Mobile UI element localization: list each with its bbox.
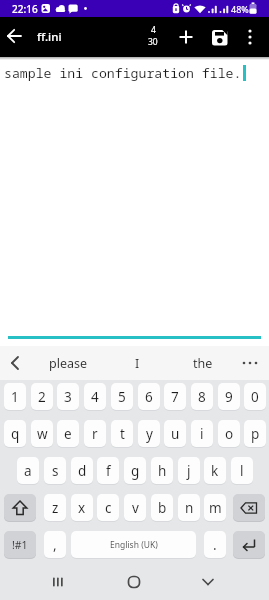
button[interactable]: m (204, 494, 226, 521)
button[interactable]: u (164, 420, 186, 447)
button[interactable] (233, 494, 265, 521)
button[interactable] (120, 570, 148, 594)
staticText: j (187, 462, 191, 480)
staticText: the (193, 355, 213, 372)
staticText: n (185, 499, 194, 517)
staticText: 7 (171, 388, 179, 406)
button[interactable]: w (31, 420, 53, 447)
staticText: 3 (64, 388, 72, 406)
button[interactable]: . (204, 531, 226, 558)
button[interactable]: !#1 (4, 531, 36, 558)
staticText: a (24, 462, 32, 480)
button[interactable]: y (138, 420, 160, 447)
button[interactable]: 4 (141, 24, 165, 48)
staticText: d (78, 462, 87, 480)
button[interactable]: i (191, 420, 213, 447)
button[interactable]: 5 (111, 383, 133, 410)
button[interactable]: 3 (57, 383, 79, 410)
button[interactable]: h (151, 457, 173, 484)
button[interactable]: q (4, 420, 26, 447)
button[interactable]: a (17, 457, 39, 484)
button[interactable]: 6 (138, 383, 160, 410)
staticText: r (92, 425, 98, 443)
button[interactable]: 7 (164, 383, 186, 410)
staticText: 8 (198, 388, 206, 406)
staticText: 2 (38, 388, 46, 406)
button[interactable]: 8 (191, 383, 213, 410)
button[interactable]: o (218, 420, 240, 447)
button[interactable]: please (36, 346, 101, 380)
button[interactable]: 0 (244, 383, 266, 410)
staticText: x (78, 499, 86, 517)
staticText: 4 (91, 388, 99, 406)
staticText: t (120, 425, 125, 443)
button[interactable]: r (84, 420, 106, 447)
button[interactable] (175, 26, 197, 48)
button[interactable]: the (170, 346, 235, 380)
staticText: s (52, 462, 59, 480)
button[interactable]: v (124, 494, 146, 521)
staticText: ff.ini (37, 29, 62, 45)
button[interactable] (194, 570, 222, 594)
button[interactable]: e (57, 420, 79, 447)
staticText: v (132, 499, 139, 517)
button[interactable]: j (178, 457, 200, 484)
button[interactable]: t (111, 420, 133, 447)
button[interactable] (4, 25, 26, 47)
staticText: h (158, 462, 167, 480)
button[interactable]: 9 (218, 383, 240, 410)
button[interactable] (205, 30, 229, 54)
button[interactable]: 2 (31, 383, 53, 410)
button[interactable]: s (44, 457, 66, 484)
staticText: e (64, 425, 72, 443)
button[interactable]: c (97, 494, 119, 521)
button[interactable]: z (44, 494, 66, 521)
button[interactable]: g (124, 457, 146, 484)
staticText: . (213, 536, 217, 554)
button[interactable]: d (71, 457, 93, 484)
button[interactable] (239, 26, 261, 48)
staticText: z (52, 499, 59, 517)
staticText: y (146, 425, 153, 443)
staticText: 48% (231, 3, 249, 15)
button[interactable] (0, 346, 34, 380)
button[interactable]: n (178, 494, 200, 521)
staticText: 4 (151, 24, 156, 36)
staticText: English (UK) (110, 539, 158, 551)
button[interactable]: 1 (4, 383, 26, 410)
button[interactable]: 4 (84, 383, 106, 410)
staticText: k (211, 462, 219, 480)
button[interactable]: , (44, 531, 66, 558)
button[interactable]: x (71, 494, 93, 521)
button[interactable]: f (97, 457, 119, 484)
button[interactable]: l (231, 457, 253, 484)
staticText: f (106, 462, 111, 480)
staticText: i (200, 425, 204, 443)
staticText: 1 (11, 388, 19, 406)
staticText: w (37, 425, 48, 443)
staticText: 5 (118, 388, 126, 406)
staticText: , (53, 536, 57, 554)
staticText: g (131, 462, 140, 480)
button[interactable]: k (204, 457, 226, 484)
button[interactable] (44, 570, 72, 594)
button[interactable] (236, 346, 266, 380)
staticText: u (171, 425, 180, 443)
staticText: o (225, 425, 234, 443)
staticText: p (251, 425, 260, 443)
button[interactable]: b (151, 494, 173, 521)
staticText: 0 (251, 388, 259, 406)
button[interactable] (233, 531, 265, 558)
button[interactable]: English (UK) (71, 531, 196, 558)
staticText: c (105, 499, 112, 517)
staticText: I (135, 355, 140, 372)
button[interactable]: I (105, 346, 170, 380)
staticText: q (11, 425, 20, 443)
staticText: !#1 (12, 538, 28, 552)
staticText: 22:16 (12, 2, 38, 16)
staticText: 6 (145, 388, 153, 406)
button[interactable] (4, 494, 36, 521)
staticText: sample ini configuration file. (4, 64, 242, 82)
button[interactable]: p (244, 420, 266, 447)
staticText: l (240, 462, 244, 480)
